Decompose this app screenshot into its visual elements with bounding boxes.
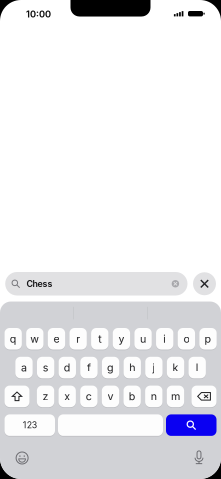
button[interactable]: k [167,357,184,378]
staticText: j [152,361,155,374]
button[interactable]: a [15,357,33,378]
staticText: n [151,390,157,403]
button[interactable]: o [178,328,195,349]
button[interactable]: p [199,328,217,349]
button[interactable]: Shift [4,386,29,407]
staticText: Chess [26,278,52,289]
button[interactable]: Delete [191,386,216,407]
staticText: 123 [23,420,37,430]
staticText: g [107,361,114,374]
staticText: z [42,390,48,403]
staticText: 10:00 [26,8,51,20]
staticText: x [64,390,70,403]
button[interactable]: c [80,386,98,407]
button[interactable]: Search [166,414,216,436]
staticText: r [76,332,80,345]
staticText: h [129,361,135,374]
button[interactable]: b [123,386,141,407]
staticText: w [30,332,39,345]
staticText: a [21,361,27,374]
button[interactable]: m [167,386,184,407]
staticText: k [173,361,179,374]
button[interactable]: n [145,386,162,407]
staticText: v [107,390,113,403]
button[interactable]: u [134,328,152,349]
staticText: u [140,332,146,345]
button[interactable]: w [26,328,44,349]
button[interactable]: h [124,357,141,378]
staticText: e [53,332,59,345]
staticText: d [64,361,71,374]
button[interactable]: q [4,328,22,349]
button[interactable]: v [102,386,119,407]
staticText: y [118,332,124,345]
staticText: t [98,332,101,345]
staticText: p [204,332,211,345]
button[interactable]: i [156,328,173,349]
button[interactable]: f [80,357,98,378]
button[interactable]: space [58,414,163,436]
staticText: i [163,332,166,345]
button[interactable]: d [59,357,76,378]
button[interactable]: x [58,386,76,407]
button[interactable]: Emoji [16,451,29,464]
staticText: o [183,332,189,345]
button[interactable]: g [102,357,119,378]
staticText: b [129,390,136,403]
staticText: l [196,361,199,374]
button[interactable]: s [37,357,54,378]
staticText: q [10,332,17,345]
button[interactable]: y [113,328,130,349]
staticText: s [43,361,49,374]
button[interactable]: 123 [4,414,55,436]
button[interactable]: e [48,328,65,349]
button[interactable]: Close [193,272,216,295]
staticText: f [87,361,91,374]
staticText: c [86,390,92,403]
button[interactable]: j [145,357,163,378]
button[interactable]: z [37,386,54,407]
staticText: m [171,390,180,403]
button[interactable]: l [188,357,206,378]
button[interactable]: Dictate [195,450,203,464]
button[interactable]: t [91,328,108,349]
button[interactable]: r [69,328,87,349]
